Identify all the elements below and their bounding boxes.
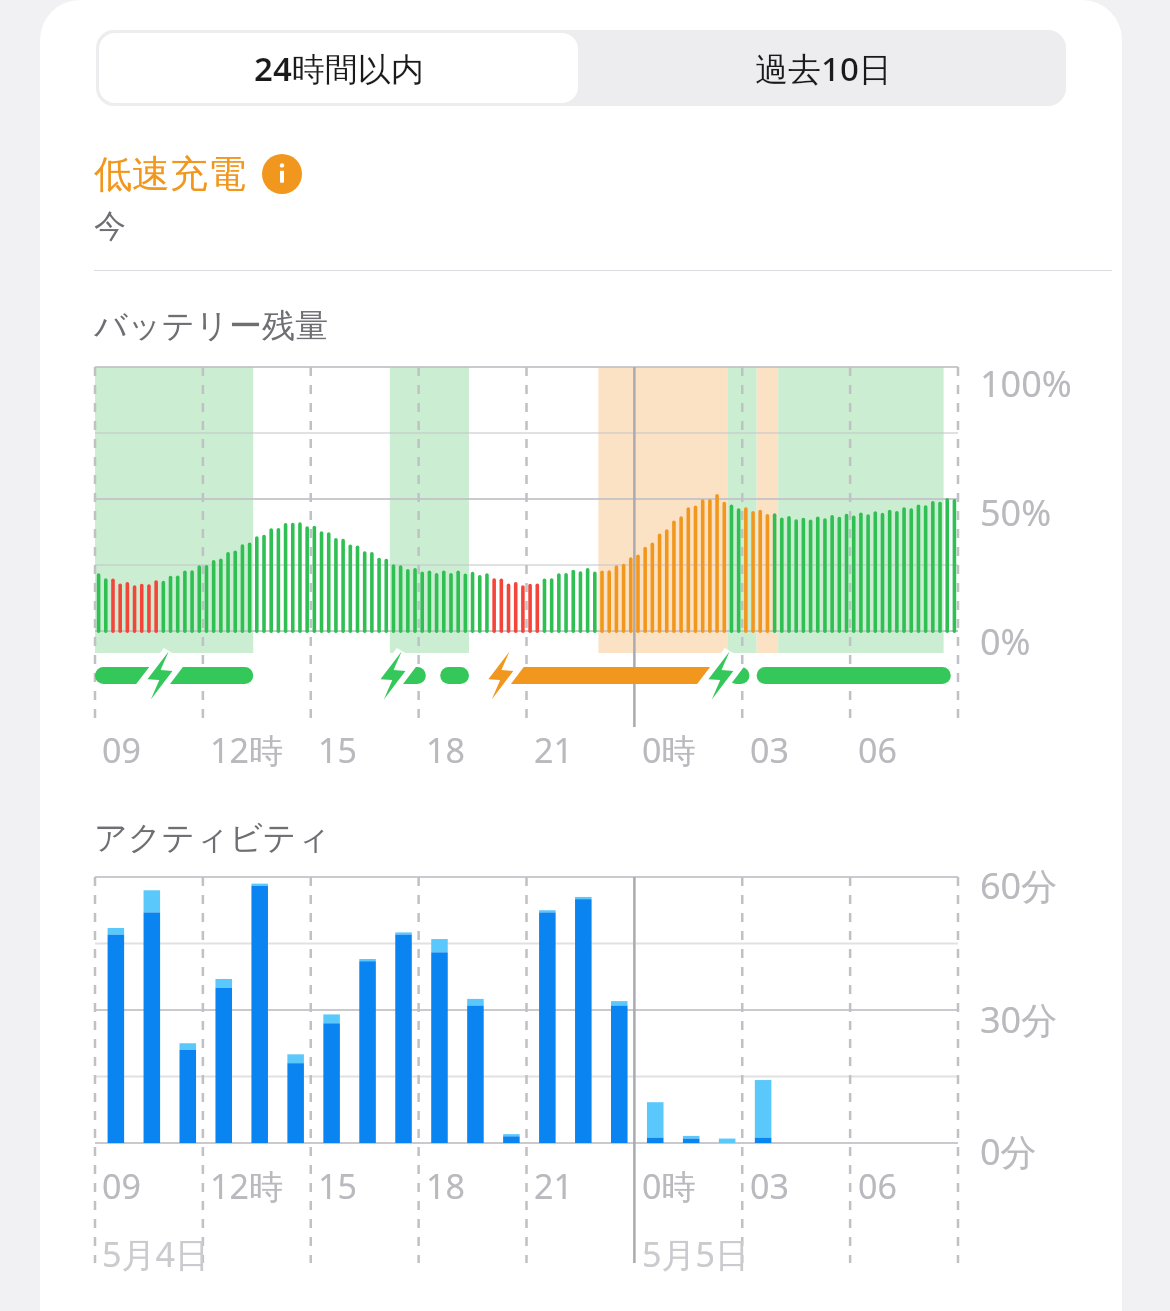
staticText: 100% — [980, 359, 1072, 408]
staticText: 15 — [318, 727, 357, 773]
staticText: 09 — [102, 727, 141, 773]
staticText: 06 — [858, 1163, 897, 1209]
staticText: アクティビティ — [94, 817, 331, 859]
staticText: 21 — [534, 727, 573, 773]
staticText: 0時 — [642, 1163, 696, 1209]
staticText: 15 — [318, 1163, 357, 1209]
staticText: 過去10日 — [755, 46, 892, 91]
staticText: 30分 — [980, 995, 1058, 1044]
staticText: 0時 — [642, 727, 696, 773]
staticText: 50% — [980, 488, 1052, 537]
staticText: 5月4日 — [102, 1231, 209, 1277]
staticText: 06 — [858, 727, 897, 773]
staticText: 0% — [980, 617, 1031, 666]
staticText: 03 — [750, 727, 789, 773]
button[interactable]: 過去10日 — [581, 30, 1066, 106]
staticText: 18 — [426, 1163, 465, 1209]
staticText: 今 — [94, 206, 126, 246]
staticText: 09 — [102, 1163, 141, 1209]
button[interactable]: 24時間以内 — [99, 33, 578, 103]
staticText: 24時間以内 — [254, 46, 424, 91]
staticText: 18 — [426, 727, 465, 773]
staticText: 21 — [534, 1163, 573, 1209]
staticText: 03 — [750, 1163, 789, 1209]
staticText: 5月5日 — [642, 1231, 749, 1277]
staticText: 60分 — [980, 861, 1058, 910]
button[interactable]: 詳しい情報 — [262, 154, 302, 194]
staticText: バッテリー残量 — [94, 305, 329, 347]
staticText: 12時 — [210, 727, 283, 773]
staticText: 12時 — [210, 1163, 283, 1209]
staticText: 0分 — [980, 1127, 1037, 1176]
staticText: 低速充電 — [94, 150, 246, 198]
